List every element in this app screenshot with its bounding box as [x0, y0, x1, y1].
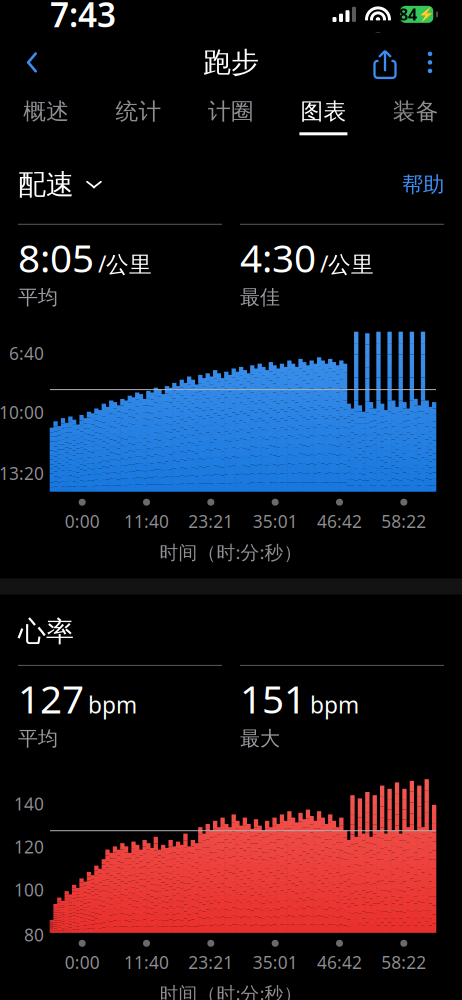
- staticText: 装备: [393, 97, 439, 125]
- staticText: 时间（时:分:秒）: [159, 540, 302, 564]
- staticText: 35:01: [253, 510, 298, 533]
- staticText: 计圈: [208, 97, 254, 125]
- staticText: 平均: [18, 285, 58, 310]
- staticText: 127: [18, 673, 84, 724]
- staticText: 4:30: [240, 232, 316, 283]
- staticText: 概述: [23, 97, 69, 125]
- staticText: 23:21: [188, 510, 233, 533]
- staticText: 140: [14, 792, 44, 815]
- staticText: 11:40: [124, 951, 169, 974]
- button[interactable]: 概述: [0, 89, 92, 143]
- staticText: 13:20: [0, 462, 44, 485]
- button[interactable]: 统计: [92, 89, 185, 143]
- staticText: 58:22: [381, 951, 426, 974]
- button[interactable]: 返回: [10, 40, 54, 84]
- staticText: 23:21: [188, 951, 233, 974]
- staticText: 平均: [18, 726, 58, 751]
- staticText: 6:40: [9, 342, 44, 365]
- button[interactable]: 帮助: [402, 165, 444, 204]
- staticText: bpm: [88, 690, 137, 720]
- button[interactable]: 分享: [362, 39, 408, 85]
- staticText: 10:00: [0, 401, 44, 424]
- button[interactable]: 计圈: [185, 89, 277, 143]
- staticText: 151: [240, 673, 306, 724]
- staticText: 46:42: [317, 510, 362, 533]
- staticText: 46:42: [317, 951, 362, 974]
- staticText: 80: [24, 923, 44, 946]
- staticText: 统计: [116, 97, 162, 125]
- button[interactable]: 配速: [18, 161, 104, 208]
- staticText: bpm: [310, 690, 359, 720]
- staticText: 心率: [18, 614, 74, 649]
- staticText: 35:01: [253, 951, 298, 974]
- staticText: 帮助: [402, 171, 444, 198]
- button[interactable]: 图表: [277, 89, 370, 143]
- button[interactable]: 装备: [370, 89, 462, 143]
- staticText: ⚡: [417, 7, 434, 22]
- staticText: /公里: [98, 249, 152, 279]
- staticText: 58:22: [381, 510, 426, 533]
- staticText: 120: [14, 835, 44, 858]
- staticText: 时间（时:分:秒）: [159, 981, 302, 1000]
- staticText: 7:43: [50, 0, 116, 37]
- staticText: 0:00: [65, 510, 100, 533]
- staticText: 100: [14, 878, 44, 901]
- staticText: 8:05: [18, 232, 94, 283]
- staticText: 11:40: [124, 510, 169, 533]
- staticText: 84: [399, 4, 417, 25]
- staticText: 最大: [240, 726, 280, 751]
- staticText: 图表: [300, 97, 346, 125]
- staticText: 配速: [18, 167, 74, 202]
- button[interactable]: 更多: [408, 39, 452, 85]
- staticText: 最佳: [240, 285, 280, 310]
- staticText: /公里: [320, 249, 374, 279]
- staticText: 跑步: [203, 45, 259, 80]
- staticText: 0:00: [65, 951, 100, 974]
